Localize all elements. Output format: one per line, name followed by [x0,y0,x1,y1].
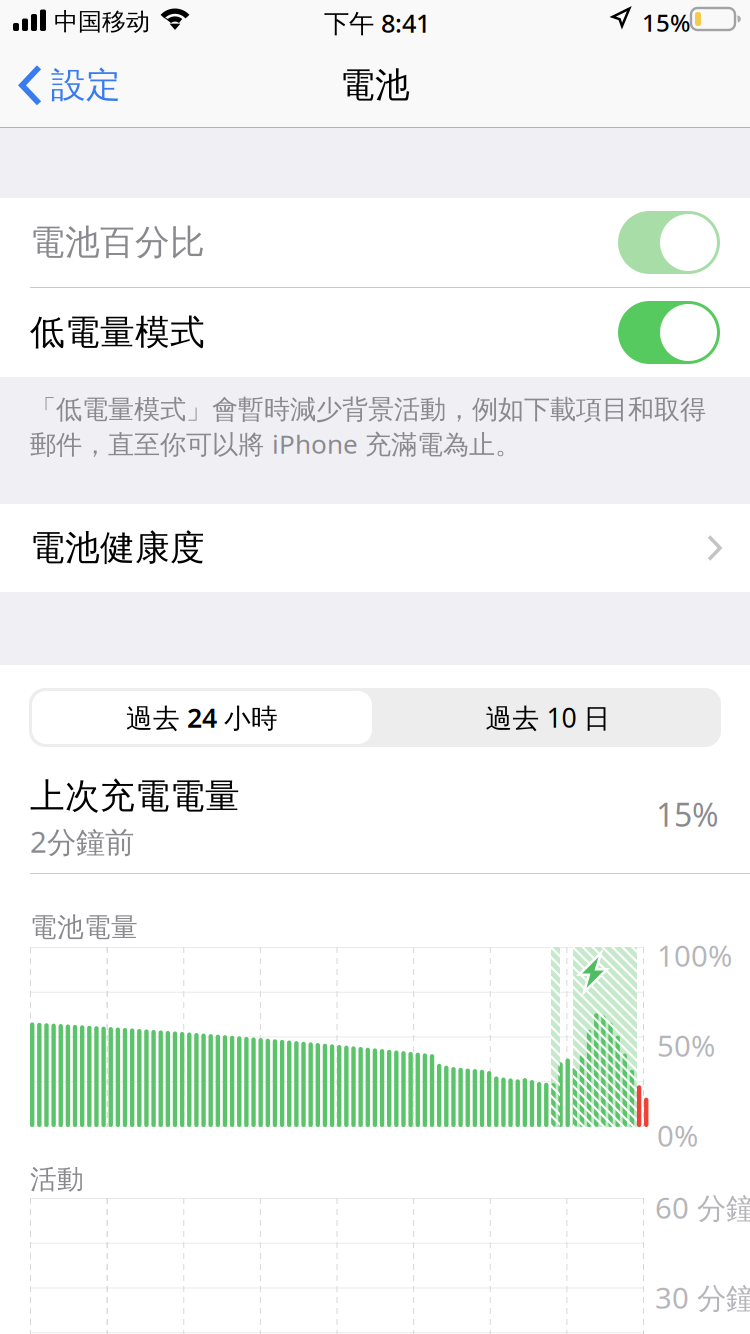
staticText: 過去 24 小時 [126,700,278,735]
staticText: 電池百分比 [30,221,205,264]
staticText: 2分鐘前 [30,822,134,861]
staticText: 低電量模式 [30,311,205,354]
button[interactable]: 低電量模式 [0,288,750,377]
staticText: 電池 [340,64,410,107]
staticText: 30 分鐘 [655,1278,750,1317]
button[interactable]: 電池健康度 [0,504,750,592]
button[interactable]: 設定 [14,52,125,119]
staticText: 0% [657,1116,698,1155]
staticText: 活動 [30,1163,84,1196]
staticText: 電池電量 [30,911,138,944]
staticText: 上次充電電量 [30,775,240,818]
staticText: 設定 [51,64,121,107]
staticText: 50% [657,1026,715,1065]
staticText: 100% [657,936,732,975]
staticText: 15% [656,793,719,835]
staticText: 15% [642,6,690,39]
button[interactable]: 過去 10 日 [375,688,721,747]
staticText: 「低電量模式」會暫時減少背景活動，例如下載項目和取得郵件，直至你可以將 iPho… [30,393,706,461]
button[interactable]: 電池百分比 [0,198,750,287]
staticText: 60 分鐘 [655,1188,750,1227]
staticText: 過去 10 日 [485,700,610,735]
staticText: 電池健康度 [30,527,205,569]
staticText: 下午 8:41 [324,6,430,40]
button[interactable]: 過去 24 小時 [29,688,375,747]
staticText: 中国移动 [54,7,150,36]
